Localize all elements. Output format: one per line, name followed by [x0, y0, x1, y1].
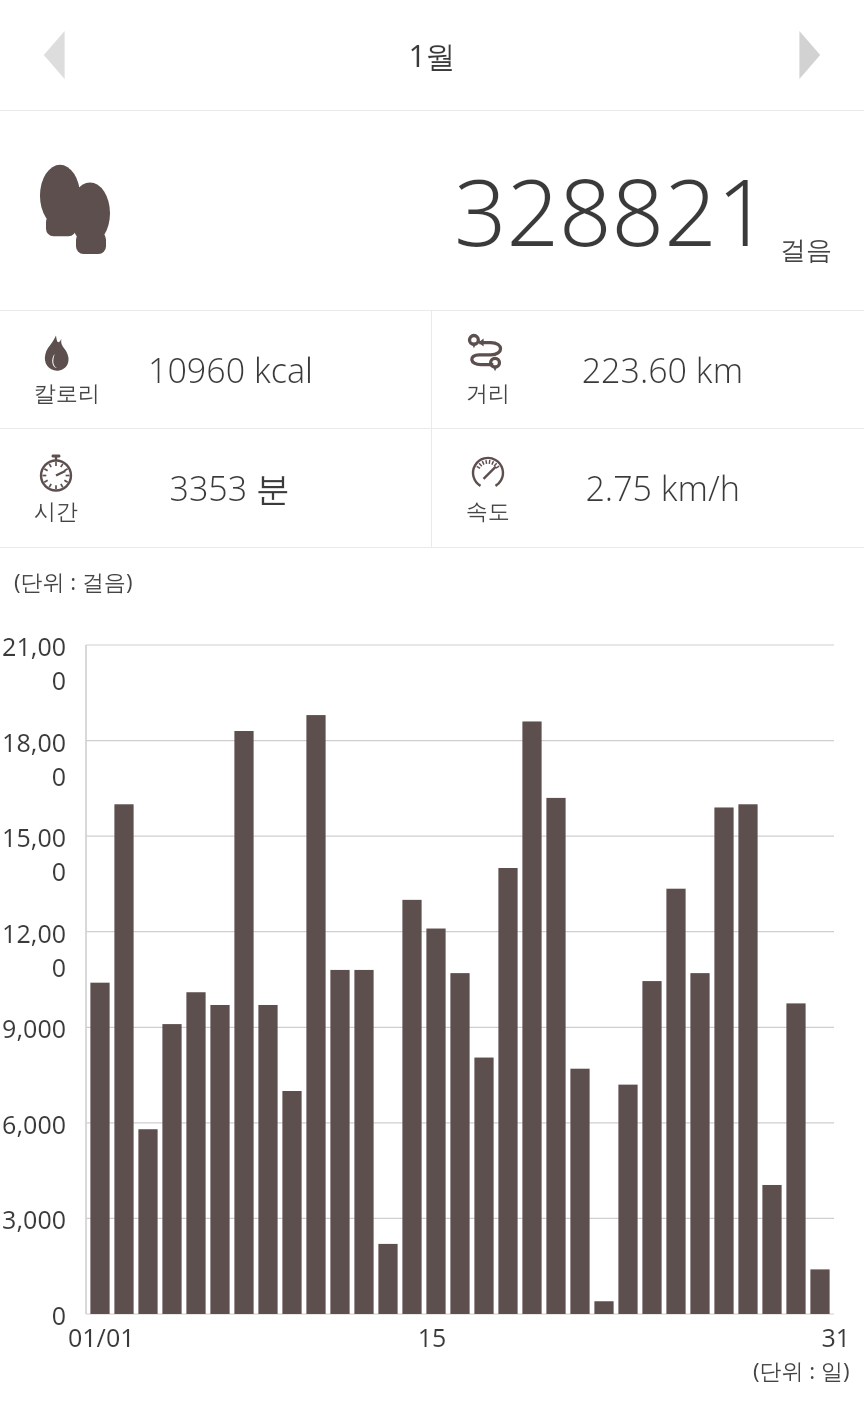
button[interactable]: 속도: [432, 429, 864, 547]
staticText: 칼로리: [34, 380, 100, 408]
staticText: (단위 : 걸음): [14, 566, 133, 596]
staticText: 31: [0, 1320, 850, 1354]
staticText: 15,000: [0, 820, 66, 888]
staticText: 거리: [466, 380, 510, 408]
staticText: 2.75 km/h: [585, 465, 740, 511]
staticText: 3353 분: [169, 465, 290, 511]
staticText: 18,000: [0, 725, 66, 793]
button[interactable]: Previous month: [22, 22, 88, 88]
button[interactable]: Next month: [776, 22, 842, 88]
staticText: 걸음: [780, 234, 832, 267]
staticText: 6,000: [0, 1107, 66, 1141]
button[interactable]: 시간: [0, 429, 431, 547]
staticText: 시간: [34, 498, 78, 526]
button[interactable]: 칼로리: [0, 311, 431, 428]
staticText: 0: [0, 1298, 66, 1332]
staticText: 10960 kcal: [147, 347, 313, 393]
staticText: 12,000: [0, 916, 66, 984]
staticText: (단위 : 일): [753, 1355, 850, 1385]
staticText: 9,000: [0, 1011, 66, 1045]
staticText: 속도: [466, 498, 510, 526]
button[interactable]: 거리: [432, 311, 864, 428]
staticText: 01/01: [68, 1320, 135, 1354]
staticText: 223.60 km: [581, 347, 743, 393]
staticText: 15: [0, 1320, 864, 1354]
staticText: 1월: [408, 35, 456, 76]
staticText: 21,000: [0, 629, 66, 697]
staticText: 3,000: [0, 1202, 66, 1236]
staticText: 328821: [454, 148, 770, 273]
